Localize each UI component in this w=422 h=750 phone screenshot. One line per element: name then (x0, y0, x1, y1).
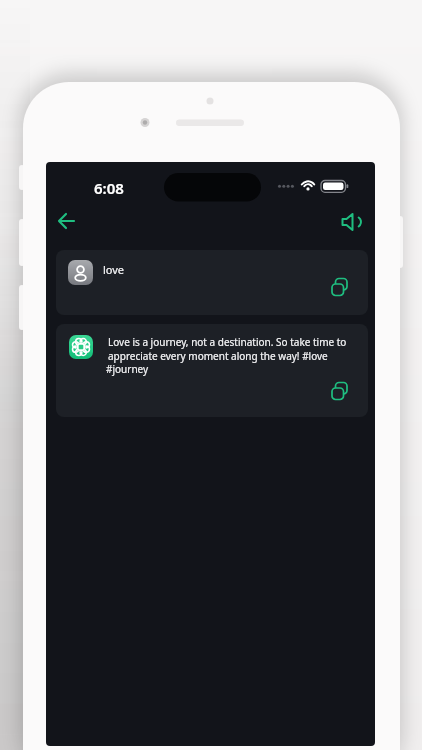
button[interactable] (328, 380, 352, 404)
button[interactable]: Love is a journey, not a destination. So… (56, 324, 368, 417)
staticText: #journey (106, 362, 149, 376)
staticText: love (103, 262, 125, 277)
staticText: appreciate every moment along the way! #… (108, 349, 328, 363)
staticText: Love is a journey, not a destination. So… (108, 335, 347, 349)
button[interactable] (50, 205, 82, 237)
staticText: 6:08 (94, 178, 124, 198)
button[interactable] (336, 207, 366, 237)
button[interactable] (328, 276, 352, 300)
button[interactable]: love (56, 250, 368, 315)
